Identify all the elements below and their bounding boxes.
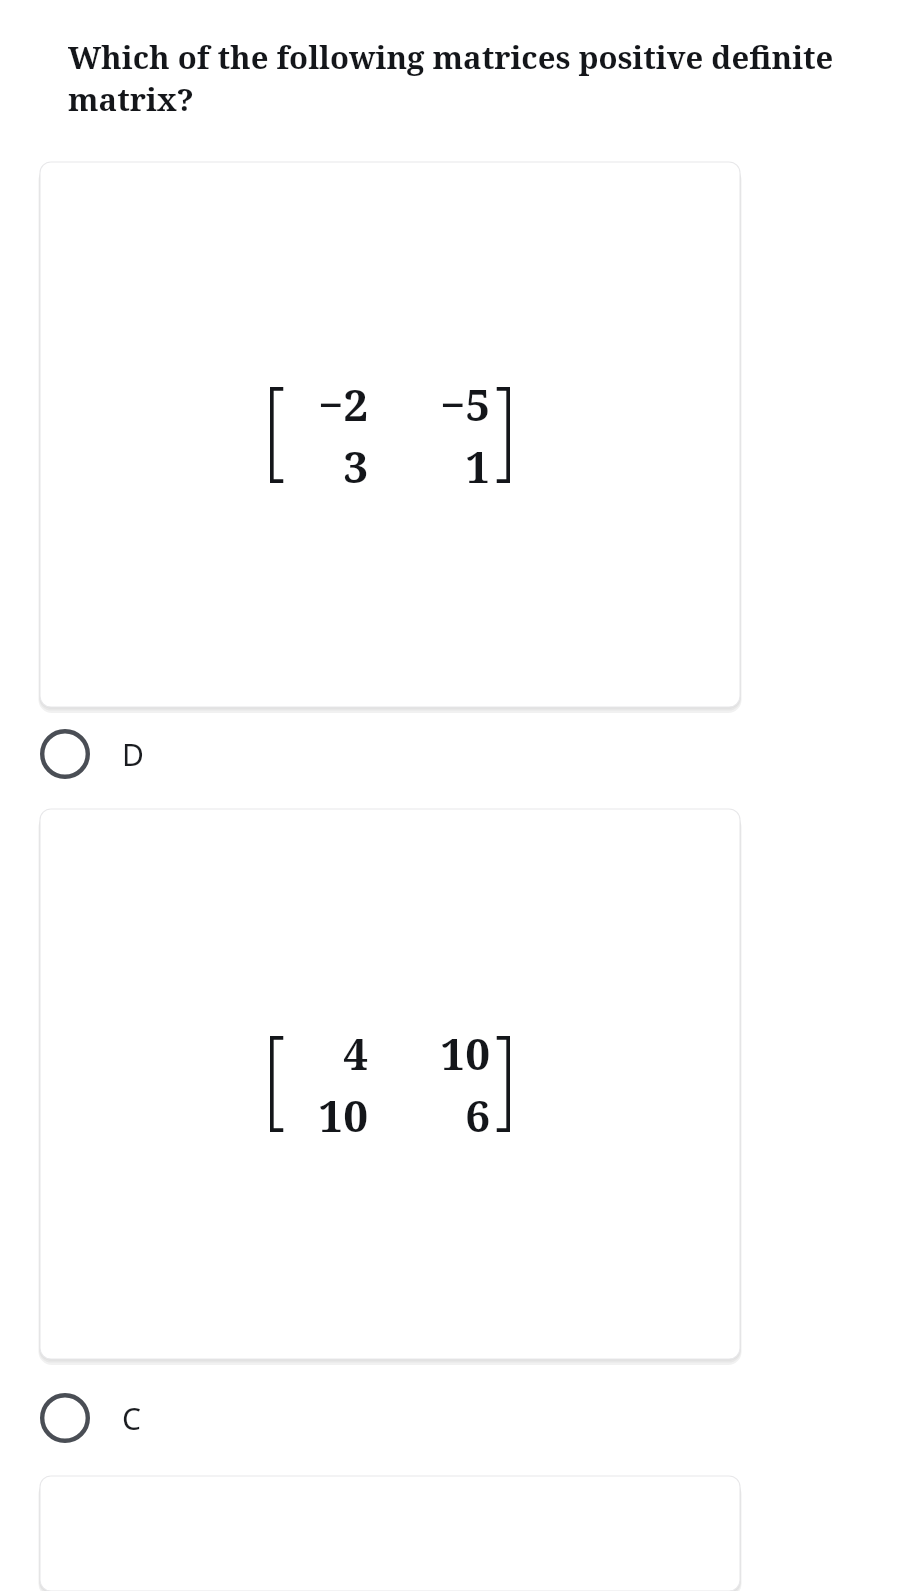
button[interactable]: 4 [40, 809, 740, 1359]
button[interactable]: C [0, 1385, 923, 1451]
staticText: 3 [343, 436, 368, 496]
staticText: 10 [318, 1085, 368, 1145]
staticText: Which of the following matrices positive… [68, 36, 895, 120]
staticText: −2 [317, 374, 368, 434]
staticText: 1 [465, 436, 490, 496]
staticText: 4 [343, 1023, 368, 1083]
staticText: C [122, 1398, 141, 1439]
staticText: D [122, 734, 144, 775]
staticText: 10 [440, 1023, 490, 1083]
staticText: 6 [465, 1085, 490, 1145]
button[interactable]: −2 [40, 162, 740, 707]
staticText: −5 [439, 374, 490, 434]
button[interactable]: D [0, 721, 923, 787]
